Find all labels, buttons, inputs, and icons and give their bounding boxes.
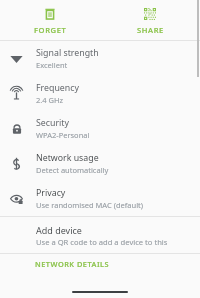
other: Forget network [44, 8, 56, 20]
button[interactable]: Share network QR code [100, 0, 200, 35]
other: Security [11, 123, 23, 135]
other: Share network QR code [144, 8, 156, 20]
staticText: Security [36, 117, 70, 129]
button[interactable]: Security [0, 111, 200, 146]
staticText: Add device [36, 224, 82, 236]
staticText: Signal strength [36, 47, 99, 59]
staticText: Use a QR code to add a device to this ne… [36, 237, 192, 247]
button[interactable]: Signal strength [0, 41, 200, 76]
other: Signal strength [10, 52, 23, 65]
button[interactable]: Frequency [0, 76, 200, 111]
button[interactable]: Add device [0, 217, 200, 253]
button[interactable]: Network usage [0, 146, 200, 181]
staticText: Network usage [36, 152, 99, 164]
staticText: Detect automatically [36, 165, 109, 175]
other: Network usage [10, 157, 23, 170]
staticText: SHARE [137, 25, 164, 35]
staticText: FORGET [34, 25, 67, 35]
staticText: Use randomised MAC (default) [36, 200, 144, 210]
staticText: 2.4 GHz [36, 95, 64, 105]
other: Frequency [10, 87, 23, 100]
staticText: Excellent [36, 60, 68, 70]
staticText: Frequency [36, 82, 79, 94]
button[interactable]: Forget network [0, 0, 100, 35]
staticText: WPA2-Personal [36, 130, 90, 140]
button[interactable]: Privacy [0, 181, 200, 216]
button[interactable]: NETWORK DETAILS [0, 254, 200, 274]
other: Privacy [10, 192, 24, 206]
staticText: Privacy [36, 187, 66, 199]
staticText: NETWORK DETAILS [35, 259, 110, 269]
